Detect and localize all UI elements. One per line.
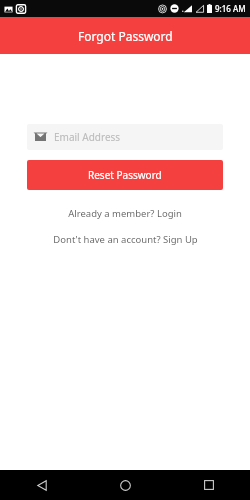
staticText: Already a member? Login bbox=[68, 207, 182, 220]
button[interactable]: Recent apps bbox=[167, 470, 250, 500]
staticText: Forgot Password bbox=[78, 28, 173, 44]
button[interactable]: Back bbox=[0, 470, 84, 500]
staticText: 9:16 AM bbox=[215, 3, 246, 14]
button[interactable]: Reset Password bbox=[27, 160, 223, 190]
button[interactable]: Home bbox=[84, 470, 167, 500]
staticText: Email Address bbox=[54, 130, 121, 144]
button[interactable]: Email Address bbox=[27, 124, 223, 150]
button[interactable]: Dont't have an account? Sign Up bbox=[0, 233, 250, 246]
staticText: Reset Password bbox=[88, 168, 162, 182]
staticText: Dont't have an account? Sign Up bbox=[53, 233, 198, 246]
button[interactable]: Already a member? Login bbox=[0, 207, 250, 220]
